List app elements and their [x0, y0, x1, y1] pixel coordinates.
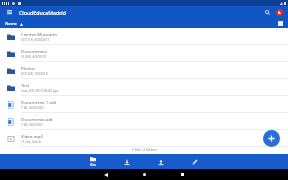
staticText: 6/21/48, 1/6/2018 [21, 72, 48, 76]
button[interactable]: Search [263, 8, 272, 17]
staticText: Photos [21, 65, 36, 71]
button[interactable]: Add [263, 130, 280, 147]
button[interactable]: Documento 1.odt [0, 96, 288, 113]
button[interactable]: Files [84, 156, 102, 167]
button[interactable]: Cientos Musicales [0, 28, 288, 45]
button[interactable]: Menu [5, 8, 14, 17]
button[interactable]: Documentos [0, 45, 288, 62]
staticText: Documentos [21, 48, 47, 54]
staticText: A [278, 10, 281, 15]
button[interactable]: Downloads [118, 159, 136, 165]
button[interactable]: Name [5, 21, 23, 27]
button[interactable]: Documento.odt [0, 113, 288, 130]
staticText: 7 kB, 4/20/2021 [21, 106, 45, 110]
staticText: 31/4/8, 4/9/2018 [21, 55, 46, 59]
staticText: 2 files, 4 folders [132, 147, 157, 151]
button[interactable]: Uploads [152, 159, 170, 165]
button[interactable]: Recents [175, 169, 189, 180]
staticText: Documento 1.odt [21, 99, 57, 105]
staticText: 11 mb, San.2r [21, 140, 42, 144]
staticText: Files [90, 163, 97, 167]
staticText: Documento.odt [21, 116, 53, 122]
staticText: Video.mp4 [21, 133, 43, 139]
button[interactable]: Video.mp4 [0, 130, 288, 147]
button[interactable]: Home [137, 169, 151, 180]
button[interactable]: Photos [0, 62, 288, 79]
staticText: Cientos Musicales [21, 31, 58, 37]
staticText: CloudEducaMadrid [19, 9, 66, 16]
button[interactable]: Back [99, 169, 113, 180]
button[interactable]: Account [275, 8, 284, 17]
staticText: 7 kB, 4/6/2018 [21, 123, 43, 127]
staticText: Name [5, 21, 18, 27]
button[interactable]: Edit [186, 159, 204, 165]
staticText: Test [21, 82, 30, 88]
staticText: num 4/8, 2017/04:04 ago. [21, 89, 60, 93]
button[interactable]: Test [0, 79, 288, 96]
staticText: 27/1/18, 4/20/2017 [21, 38, 50, 42]
